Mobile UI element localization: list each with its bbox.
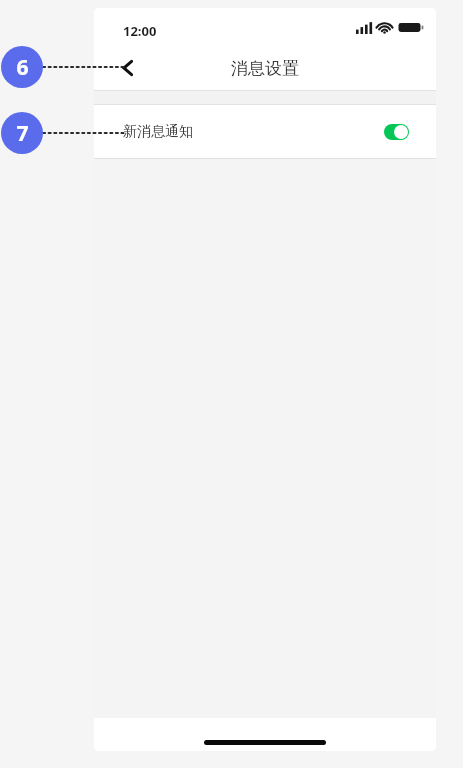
button[interactable]: 新消息通知 (94, 105, 436, 158)
button[interactable]: Back (112, 52, 144, 84)
staticText: 12:00 (123, 22, 157, 40)
button[interactable]: New message notification toggle (384, 124, 409, 140)
staticText: 消息设置 (94, 58, 436, 79)
staticText: 7 (16, 119, 29, 148)
staticText: 新消息通知 (123, 123, 193, 141)
staticText: 6 (16, 53, 29, 82)
